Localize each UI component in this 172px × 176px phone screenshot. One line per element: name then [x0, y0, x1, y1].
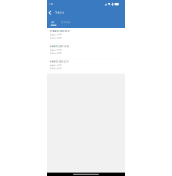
staticText: GPS [51, 21, 54, 24]
staticText: Multi Core: 3488 [50, 37, 62, 39]
button[interactable]: COMPASS [57, 17, 73, 28]
staticText: Multi Core: 3190 [50, 52, 62, 54]
staticText: 1:09 [49, 3, 53, 5]
staticText: Single Core: 1419 [50, 64, 62, 66]
staticText: History [55, 11, 65, 14]
staticText: Single Core: 1446 [50, 49, 62, 51]
button[interactable]: GPS [48, 17, 57, 28]
button[interactable]: 4 March 2024 22:51 [47, 58, 125, 74]
staticText: COMPASS [61, 21, 70, 24]
button[interactable]: 9 March 2024 13:09 [47, 43, 125, 58]
staticText: 9 March 2024 13:09 [50, 45, 69, 48]
button[interactable]: 15 March 2024 09:31 [47, 28, 125, 43]
staticText: 15 March 2024 09:31 [50, 30, 70, 32]
staticText: Single Core: 1446 [50, 34, 62, 36]
staticText: Multi Core: 3128 [50, 67, 62, 70]
staticText: 4 March 2024 22:51 [50, 61, 69, 63]
button[interactable]: Back [47, 8, 53, 17]
